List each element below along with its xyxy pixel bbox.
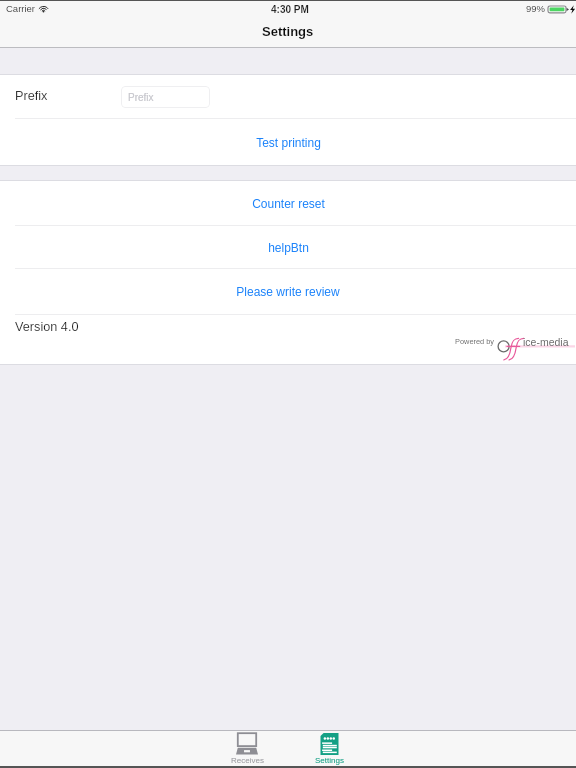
staticText: 4:30 PM [271, 4, 309, 15]
staticText: Carrier [6, 3, 36, 14]
button[interactable]: Please write review [0, 269, 576, 314]
staticText: 99% [526, 3, 546, 14]
staticText: Prefix [15, 89, 48, 103]
button[interactable]: Receives [206, 731, 288, 768]
staticText: Settings [315, 756, 344, 765]
staticText: Powered by [455, 337, 495, 345]
staticText: Counter reset [252, 197, 325, 210]
button[interactable]: helpBtn [0, 226, 576, 268]
button[interactable]: Prefix [121, 86, 210, 108]
staticText: helpBtn [268, 241, 309, 254]
other: Settings [320, 733, 339, 755]
staticText: Please write review [236, 285, 340, 298]
other: Receives [236, 733, 258, 755]
staticText: Test printing [256, 136, 321, 149]
staticText: Version 4.0 [15, 320, 79, 334]
staticText: ice-media [523, 336, 569, 348]
button[interactable]: Counter reset [0, 181, 576, 225]
staticText: Receives [231, 756, 264, 765]
button[interactable]: Settings [288, 731, 370, 768]
button[interactable]: Test printing [0, 119, 576, 165]
staticText: Prefix [128, 92, 154, 103]
staticText: Settings [262, 24, 314, 39]
button[interactable]: Prefix [0, 75, 576, 118]
